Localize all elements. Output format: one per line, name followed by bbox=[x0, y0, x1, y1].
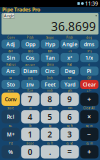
staticText: Angle bbox=[4, 13, 14, 18]
button[interactable]: yds bbox=[60, 89, 79, 106]
staticText: Yard bbox=[64, 81, 75, 88]
staticText: Rcl bbox=[7, 113, 15, 120]
button[interactable]: cm bbox=[41, 106, 59, 123]
staticText: asin bbox=[8, 49, 13, 53]
staticText: Tan bbox=[45, 54, 54, 61]
staticText: Inv bbox=[26, 81, 34, 88]
button[interactable]: mm bbox=[60, 106, 79, 123]
button[interactable]: Mtr bbox=[60, 76, 79, 89]
staticText: M- bbox=[9, 76, 12, 80]
staticText: Feet bbox=[44, 81, 55, 88]
button[interactable]: acos bbox=[21, 49, 40, 62]
staticText: 3 bbox=[67, 129, 72, 140]
button[interactable]: x^y bbox=[80, 49, 98, 62]
button[interactable]: cu m bbox=[80, 142, 98, 158]
button[interactable]: Inch bbox=[41, 76, 59, 89]
button[interactable]: cu yd bbox=[60, 142, 79, 158]
staticText: m bbox=[29, 107, 31, 110]
button[interactable]: Radius bbox=[1, 63, 20, 76]
button[interactable]: e bbox=[80, 63, 98, 76]
staticText: inch bbox=[47, 89, 53, 92]
button[interactable]: Pitch bbox=[60, 36, 79, 49]
staticText: Pitch bbox=[27, 36, 34, 39]
button[interactable]: cu ft bbox=[41, 142, 59, 158]
staticText: Conv bbox=[5, 96, 17, 103]
staticText: Pct bbox=[9, 142, 13, 145]
staticText: Mtr bbox=[68, 76, 72, 80]
button[interactable]: Pct bbox=[1, 142, 20, 158]
staticText: 8 bbox=[47, 94, 52, 105]
staticText: 1/x bbox=[85, 54, 93, 61]
staticText: Pipe Trades Pro bbox=[2, 6, 40, 13]
staticText: Log bbox=[28, 76, 33, 80]
button[interactable]: inch bbox=[41, 89, 59, 106]
staticText: − bbox=[87, 130, 91, 139]
button[interactable]: asin bbox=[1, 49, 20, 62]
button[interactable]: Clear All bbox=[80, 106, 98, 123]
staticText: × bbox=[87, 112, 91, 121]
button[interactable]: Rad bbox=[60, 63, 79, 76]
staticText: x² bbox=[67, 54, 72, 61]
button[interactable]: slope bbox=[21, 142, 40, 158]
staticText: e bbox=[88, 63, 90, 66]
staticText: Rad bbox=[67, 63, 72, 66]
staticText: = bbox=[67, 146, 72, 157]
button[interactable]: ft-in bbox=[21, 89, 40, 106]
staticText: dms bbox=[84, 41, 95, 48]
button[interactable]: lb bbox=[21, 124, 40, 141]
staticText: Radius bbox=[6, 63, 15, 66]
staticText: Conv bbox=[7, 36, 14, 39]
staticText: atan bbox=[47, 49, 52, 53]
button[interactable]: Area bbox=[41, 63, 59, 76]
button[interactable]: M− bbox=[1, 124, 20, 141]
button[interactable]: atan bbox=[41, 49, 59, 62]
staticText: Hyp bbox=[45, 41, 55, 48]
staticText: cu yd bbox=[66, 142, 73, 145]
button[interactable]: Log bbox=[21, 76, 40, 89]
button[interactable]: Store bbox=[1, 106, 20, 123]
button[interactable]: Pitch bbox=[21, 36, 40, 49]
staticText: 4 bbox=[28, 111, 33, 122]
staticText: Pi bbox=[87, 67, 92, 75]
staticText: √x bbox=[68, 49, 71, 53]
staticText: . bbox=[49, 146, 51, 157]
staticText: deg bbox=[86, 36, 92, 39]
staticText: Sto bbox=[7, 81, 15, 88]
staticText: ÷ bbox=[87, 95, 91, 104]
staticText: acos bbox=[28, 49, 33, 53]
staticText: Cos bbox=[26, 54, 35, 61]
button[interactable]: Arc Len bbox=[21, 63, 40, 76]
staticText: Clear All bbox=[83, 107, 95, 110]
button[interactable]: Slope bbox=[41, 36, 59, 49]
staticText: Opp bbox=[25, 41, 35, 48]
button[interactable]: sq in bbox=[80, 124, 98, 141]
button[interactable]: Conv bbox=[1, 36, 20, 49]
button[interactable]: sq ft bbox=[60, 124, 79, 141]
staticText: yds bbox=[68, 89, 72, 92]
staticText: Area bbox=[47, 63, 53, 66]
button[interactable]: M- bbox=[1, 76, 20, 89]
button[interactable]: +/− bbox=[80, 89, 98, 106]
button[interactable]: Store bbox=[1, 89, 20, 106]
staticText: Adj bbox=[6, 41, 15, 48]
button[interactable]: kg bbox=[41, 124, 59, 141]
staticText: Sin bbox=[7, 54, 15, 61]
staticText: cu m bbox=[86, 142, 92, 145]
button[interactable]: Off bbox=[80, 76, 98, 89]
staticText: 36.8699 bbox=[51, 18, 96, 34]
staticText: Diam bbox=[23, 67, 37, 75]
staticText: 7 bbox=[28, 94, 33, 105]
staticText: 9 bbox=[67, 94, 72, 105]
staticText: cu ft bbox=[47, 142, 53, 145]
staticText: Store bbox=[7, 89, 14, 92]
staticText: ft-in bbox=[27, 89, 33, 92]
staticText: Angle bbox=[62, 41, 77, 48]
staticText: M− bbox=[9, 124, 13, 128]
button[interactable]: deg bbox=[80, 36, 98, 49]
staticText: sq ft bbox=[67, 124, 73, 128]
staticText: Off bbox=[87, 76, 91, 80]
staticText: Slope bbox=[46, 36, 54, 39]
staticText: kg bbox=[48, 124, 51, 128]
button[interactable]: m bbox=[21, 106, 40, 123]
button[interactable]: √x bbox=[60, 49, 79, 62]
